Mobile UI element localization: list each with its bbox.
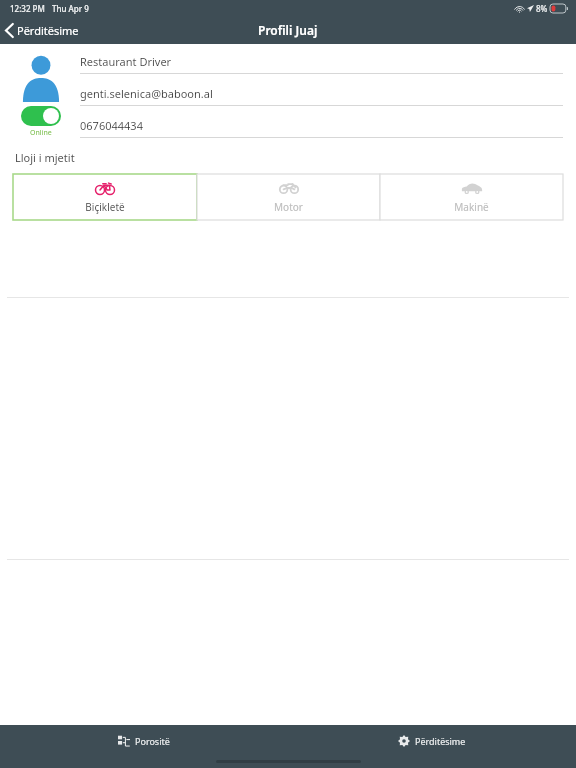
staticText: Përditësime xyxy=(415,735,466,747)
button[interactable]: Motor xyxy=(197,174,380,220)
staticText: Biçikletë xyxy=(85,200,125,214)
staticText: 8% xyxy=(536,3,548,14)
staticText: Lloji i mjetit xyxy=(15,150,75,165)
staticText: Motor xyxy=(274,200,303,214)
button[interactable]: Biçikletë xyxy=(13,174,197,220)
staticText: Profili Juaj xyxy=(258,22,318,38)
other: Përditësime xyxy=(398,735,410,747)
staticText: genti.selenica@baboon.al xyxy=(80,86,213,101)
button[interactable]: 0676044434 xyxy=(80,118,563,138)
button[interactable]: Përditësime xyxy=(388,731,476,751)
staticText: Thu Apr 9 xyxy=(52,3,89,14)
staticText: Përditësime xyxy=(17,23,79,38)
staticText: Restaurant Driver xyxy=(80,54,172,69)
button[interactable]: Online toggle xyxy=(21,106,61,126)
staticText: Porositë xyxy=(135,735,170,747)
button[interactable]: Porositë xyxy=(108,731,180,751)
other: Porositë xyxy=(118,735,130,747)
button[interactable]: genti.selenica@baboon.al xyxy=(80,86,563,106)
button[interactable]: Restaurant Driver xyxy=(80,54,563,74)
staticText: Makinë xyxy=(454,200,489,214)
button[interactable]: Makinë xyxy=(380,174,563,220)
staticText: 12:32 PM xyxy=(10,3,45,14)
staticText: 0676044434 xyxy=(80,118,143,133)
button[interactable]: Përditësime xyxy=(0,19,89,42)
staticText: Online xyxy=(30,128,52,138)
